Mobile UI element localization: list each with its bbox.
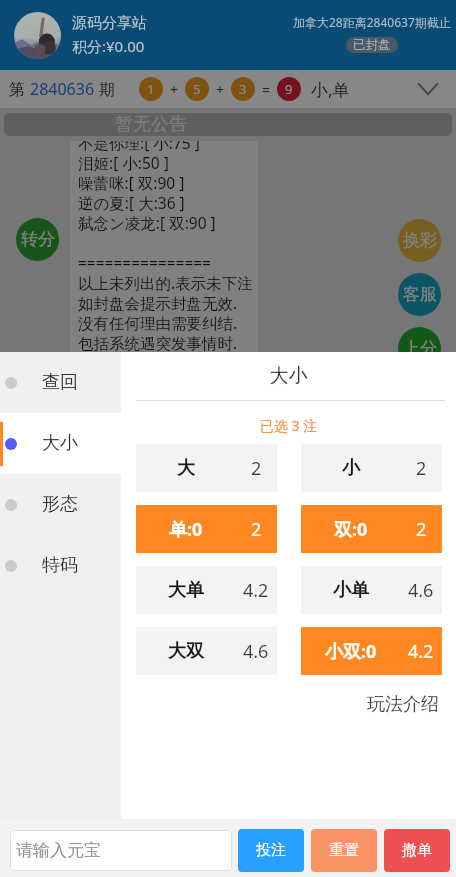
- staticText: 客服: [403, 284, 437, 305]
- staticText: 逆の夏:[ 大:36 ]: [78, 192, 258, 212]
- staticText: 3: [239, 80, 247, 98]
- staticText: 4.6: [243, 639, 269, 664]
- staticText: 大双: [168, 640, 204, 663]
- button[interactable]: Profile avatar: [14, 12, 61, 59]
- button[interactable]: 双:0: [301, 505, 442, 553]
- button[interactable]: 形态: [0, 474, 121, 535]
- staticText: 以上未列出的.表示未下注: [78, 272, 258, 292]
- button[interactable]: Expand: [412, 73, 444, 105]
- staticText: +: [170, 80, 179, 99]
- staticText: 期: [95, 78, 116, 100]
- button[interactable]: 单:0: [136, 505, 277, 553]
- button[interactable]: 暂无公告: [4, 113, 452, 136]
- button[interactable]: 重置: [311, 829, 377, 872]
- button[interactable]: 转分: [16, 218, 59, 261]
- staticText: 第: [9, 78, 30, 100]
- staticText: 小: [342, 457, 360, 480]
- staticText: +: [216, 80, 225, 99]
- staticText: 小单: [333, 579, 369, 602]
- staticText: 双:0: [334, 517, 368, 542]
- staticText: 形态: [42, 493, 78, 516]
- staticText: 投注: [256, 841, 286, 860]
- staticText: 2: [416, 517, 427, 542]
- staticText: 4.2: [243, 578, 269, 603]
- staticText: 4.2: [408, 639, 434, 664]
- staticText: 重置: [329, 841, 359, 860]
- staticText: 源码分享站: [72, 14, 147, 33]
- staticText: 大单: [168, 579, 204, 602]
- staticText: 大: [177, 457, 195, 480]
- staticText: 已封盘: [353, 37, 391, 53]
- button[interactable]: 小单: [301, 566, 442, 614]
- staticText: 没有任何理由需要纠结.: [78, 312, 258, 332]
- staticText: 噪蕾咪:[ 双:90 ]: [78, 172, 258, 192]
- staticText: 暂无公告: [115, 113, 187, 136]
- button[interactable]: 大双: [136, 627, 277, 675]
- button[interactable]: 上分: [398, 327, 441, 370]
- button[interactable]: 已封盘: [346, 37, 398, 53]
- staticText: 2: [416, 456, 427, 481]
- staticText: 换彩: [403, 230, 437, 251]
- button[interactable]: 客服: [398, 273, 441, 316]
- staticText: 请输入元宝: [16, 840, 101, 861]
- staticText: 包括系统遇突发事情时.: [78, 332, 258, 352]
- staticText: 小,单: [311, 78, 350, 101]
- staticText: 5: [193, 80, 201, 98]
- staticText: 查回: [42, 371, 78, 394]
- staticText: 已选 3 注: [121, 416, 456, 435]
- button[interactable]: 特码: [0, 535, 121, 596]
- button[interactable]: 请输入元宝: [10, 830, 232, 871]
- staticText: 泪姬:[ 小:50 ]: [78, 152, 258, 172]
- staticText: 积分:¥0.00: [72, 36, 145, 56]
- button[interactable]: 换彩: [398, 219, 441, 262]
- staticText: 如封盘会提示封盘无效.: [78, 292, 258, 312]
- button[interactable]: 投注: [238, 829, 304, 872]
- staticText: 单:0: [169, 517, 203, 542]
- button[interactable]: 撤单: [384, 829, 450, 872]
- staticText: 2840636: [30, 78, 95, 100]
- button[interactable]: 查回: [0, 352, 121, 413]
- staticText: 撤单: [402, 841, 432, 860]
- staticText: 2: [251, 517, 262, 542]
- staticText: =: [262, 80, 271, 99]
- staticText: 4.6: [408, 578, 434, 603]
- staticText: 大小: [121, 364, 456, 388]
- staticText: 不是你理:[ 小:75 ]: [78, 141, 258, 152]
- staticText: 特码: [42, 554, 78, 577]
- staticText: 2: [251, 456, 262, 481]
- staticText: 转分: [21, 229, 55, 250]
- button[interactable]: 小双:0: [301, 627, 442, 675]
- button[interactable]: 大单: [136, 566, 277, 614]
- staticText: 大小: [42, 432, 78, 455]
- button[interactable]: 小: [301, 444, 442, 492]
- staticText: ===============: [78, 252, 258, 272]
- button[interactable]: 大: [136, 444, 277, 492]
- staticText: 9: [285, 80, 293, 98]
- staticText: 弑念ン凌龙:[ 双:90 ]: [78, 212, 258, 232]
- staticText: 1: [147, 80, 155, 98]
- staticText: 小双:0: [325, 639, 377, 664]
- button[interactable]: 大小: [0, 413, 121, 474]
- staticText: 加拿大28距离2840637期截止: [293, 14, 451, 30]
- staticText: 上分: [403, 338, 437, 359]
- button[interactable]: 玩法介绍: [367, 693, 456, 716]
